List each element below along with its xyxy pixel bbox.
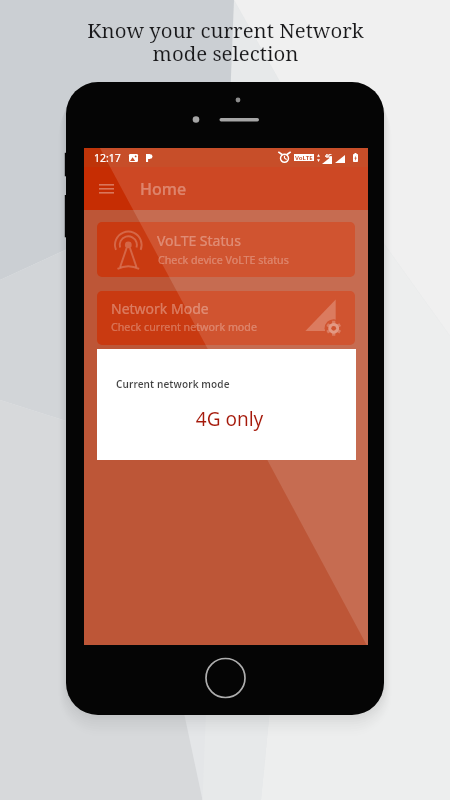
staticText: VoLTE (295, 154, 313, 161)
staticText: Check device VoLTE status (158, 253, 289, 268)
staticText: Know your current Network mode selection (87, 16, 364, 67)
staticText: Check current network mode (111, 320, 257, 335)
staticText: Current network mode (116, 377, 230, 391)
button[interactable]: Open navigation menu (89, 167, 124, 210)
staticText: VoLTE Status (157, 231, 241, 250)
staticText: 4G only (100, 406, 359, 432)
button[interactable]: Network Mode (97, 291, 355, 345)
staticText: Home (140, 178, 187, 200)
staticText: Network Mode (111, 299, 209, 318)
button[interactable]: VoLTE Status (97, 222, 355, 277)
staticText: 12:17 (94, 151, 121, 165)
staticText: 4G (325, 152, 332, 159)
